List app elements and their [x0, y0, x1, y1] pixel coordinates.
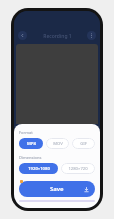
button[interactable]: 1920×1080 [19, 163, 58, 174]
button[interactable]: 1280×720 [61, 163, 95, 174]
button[interactable]: Back [18, 31, 27, 40]
staticText: 1280×720 [68, 166, 88, 172]
staticText: Save [50, 185, 64, 193]
staticText: 1920×1080 [28, 166, 50, 172]
staticText: MOV [53, 141, 63, 147]
staticText: Format [19, 130, 33, 135]
button[interactable]: Save [19, 181, 95, 197]
staticText: Recording 1 [43, 33, 72, 40]
button[interactable]: MP4 [19, 138, 43, 149]
staticText: Dimensions [19, 155, 42, 160]
button[interactable]: More options [87, 31, 96, 40]
staticText: MP4 [27, 141, 36, 147]
staticText: GIF [80, 141, 87, 147]
button[interactable]: MOV [46, 138, 69, 149]
button[interactable]: GIF [72, 138, 95, 149]
